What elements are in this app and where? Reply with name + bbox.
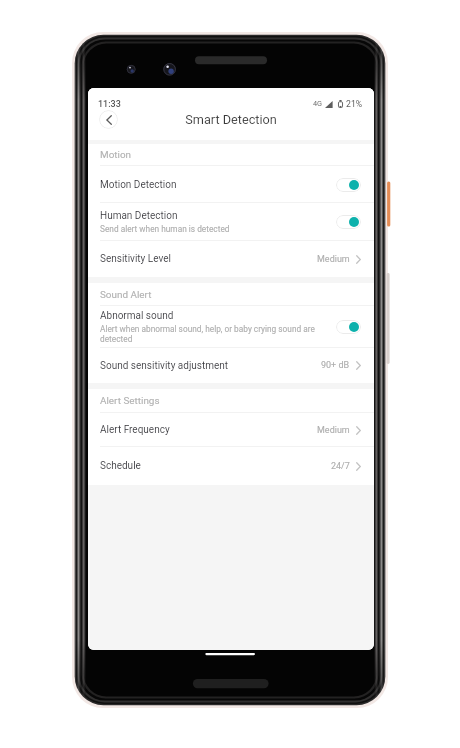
button[interactable]: Toggle [336,178,361,192]
button[interactable]: Toggle [336,320,361,334]
staticText: 24/7 [331,461,350,472]
staticText: Motion [100,149,132,161]
button[interactable]: Abnormal sound [88,306,374,348]
staticText: Send alert when human is detected [100,224,230,234]
staticText: Human Detection [100,210,178,222]
staticText: 21% [346,99,363,109]
staticText: Alert Frequency [100,424,317,436]
staticText: Medium [317,425,350,436]
staticText: Alert Settings [100,395,160,407]
button[interactable]: Alert Frequency [88,413,374,447]
staticText: Smart Detection [88,112,374,127]
button[interactable]: Toggle [336,215,361,229]
staticText: Schedule [100,460,331,472]
staticText: Motion Detection [100,179,177,191]
staticText: 90+ dB [321,360,350,371]
button[interactable]: Back [99,110,118,129]
staticText: 4G [313,99,323,108]
staticText: Sound sensitivity adjustment [100,360,321,372]
button[interactable]: Schedule [88,447,374,485]
button[interactable]: Human Detection [88,203,374,241]
staticText: Abnormal sound [100,310,174,322]
staticText: Medium [317,254,350,265]
staticText: 11:33 [98,99,121,110]
staticText: Sensitivity Level [100,253,317,265]
button[interactable]: Sound sensitivity adjustment [88,348,374,383]
button[interactable]: Sensitivity Level [88,241,374,277]
staticText: Sound Alert [100,289,152,301]
staticText: Alert when abnormal sound, help, or baby… [100,324,330,344]
button[interactable]: Motion Detection [88,166,374,203]
